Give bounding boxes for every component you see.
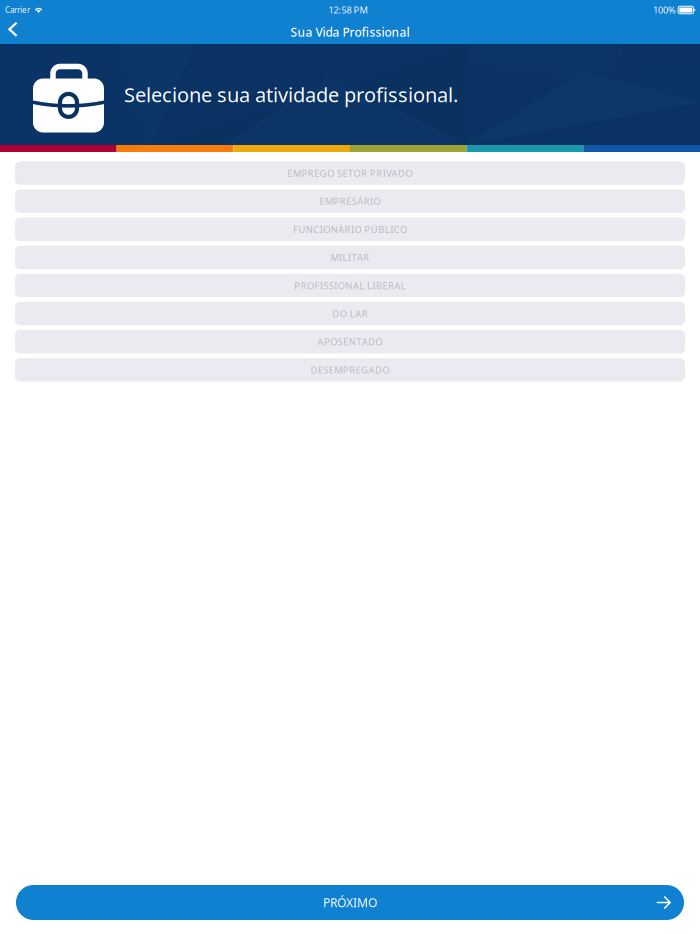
staticText: Sua Vida Profissional	[290, 24, 409, 40]
button[interactable]: APOSENTADO	[15, 330, 685, 353]
button[interactable]: MILITAR	[15, 246, 685, 269]
staticText: DESEMPREGADO	[310, 364, 389, 376]
button[interactable]: EMPREGO SETOR PRIVADO	[15, 161, 685, 185]
staticText: 12:58 PM	[329, 4, 368, 16]
staticText: EMPRESÁRIO	[319, 195, 381, 207]
button[interactable]: EMPRESÁRIO	[15, 189, 685, 213]
staticText: APOSENTADO	[317, 336, 383, 348]
staticText: FUNCIONÁRIO PÚBLICO	[293, 223, 407, 236]
staticText: EMPREGO SETOR PRIVADO	[287, 167, 412, 179]
staticText: PROFISSIONAL LIBERAL	[294, 279, 406, 292]
button[interactable]: Back	[0, 20, 40, 44]
staticText: Carrier	[5, 5, 30, 15]
button[interactable]: FUNCIONÁRIO PÚBLICO	[15, 218, 685, 241]
staticText: 100%	[653, 4, 676, 16]
staticText: MILITAR	[331, 251, 369, 264]
staticText: DO LAR	[332, 307, 368, 320]
staticText: Selecione sua atividade profissional.	[124, 81, 458, 108]
button[interactable]: PRÓXIMO	[16, 885, 684, 920]
button[interactable]: DESEMPREGADO	[15, 358, 685, 382]
staticText: PRÓXIMO	[323, 894, 377, 910]
button[interactable]: PROFISSIONAL LIBERAL	[15, 274, 685, 297]
